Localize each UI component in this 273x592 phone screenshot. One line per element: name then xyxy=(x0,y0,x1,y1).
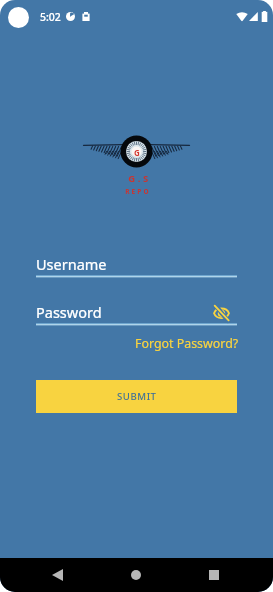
staticText: G.S xyxy=(128,172,151,185)
staticText: Password xyxy=(36,302,102,322)
staticText: REPO xyxy=(125,187,151,196)
button[interactable]: Forgot Password? xyxy=(131,334,243,352)
staticText: G xyxy=(134,147,140,158)
button[interactable]: Home xyxy=(118,558,154,592)
staticText: SUBMIT xyxy=(117,390,157,403)
button[interactable]: Back xyxy=(39,558,75,592)
staticText: 5:02 xyxy=(40,10,61,24)
staticText: Forgot Password? xyxy=(135,335,239,352)
staticText: Username xyxy=(36,254,107,274)
button[interactable]: Password xyxy=(36,300,237,326)
button[interactable]: Recent apps xyxy=(196,558,232,592)
button[interactable]: Username xyxy=(36,252,237,278)
button[interactable]: Toggle password visibility xyxy=(211,302,232,323)
button[interactable]: SUBMIT xyxy=(36,380,237,413)
